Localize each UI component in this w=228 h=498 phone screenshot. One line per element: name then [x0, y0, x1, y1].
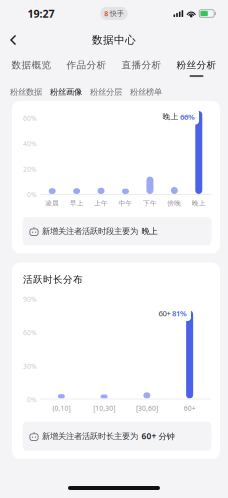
staticText: 早上	[70, 199, 84, 207]
button[interactable]: 粉丝分析	[169, 57, 224, 79]
staticText: 直播分析	[121, 59, 161, 71]
staticText: 新增关注者活跃时段主要为	[42, 226, 138, 236]
staticText: 中午	[118, 199, 132, 207]
button[interactable]: 粉丝数据	[10, 85, 42, 99]
staticText: 新增关注者活跃时长主要为	[42, 431, 138, 441]
staticText: 活跃时长分布	[23, 273, 83, 285]
button[interactable]: Back	[0, 28, 27, 52]
staticText: 傍晚	[167, 199, 181, 207]
button[interactable]: 数据概览	[4, 57, 59, 79]
staticText: 20%	[23, 164, 37, 174]
staticText: 粉丝画像	[50, 87, 82, 97]
staticText: 0%	[27, 190, 37, 199]
staticText: 晚上	[192, 199, 206, 207]
button[interactable]: 直播分析	[114, 57, 169, 79]
staticText: 60+ 分钟	[141, 430, 174, 442]
staticText: 90%	[23, 294, 37, 304]
staticText: 0%	[27, 395, 37, 404]
staticText: 下午	[143, 199, 157, 207]
staticText: 60%	[23, 113, 37, 123]
button[interactable]: 粉丝榜单	[130, 85, 162, 99]
staticText: 60%	[23, 328, 37, 337]
button[interactable]: 粉丝分层	[90, 85, 122, 99]
staticText: 81%	[172, 308, 187, 318]
staticText: 粉丝分析	[176, 59, 216, 71]
staticText: 19:27	[27, 6, 54, 21]
staticText: 粉丝榜单	[130, 87, 162, 97]
staticText: 数据概览	[11, 59, 51, 71]
staticText: 8	[104, 9, 108, 18]
staticText: 粉丝数据	[10, 87, 42, 97]
staticText: 凌晨	[45, 199, 59, 207]
staticText: 30%	[23, 361, 37, 371]
staticText: [10,30]	[93, 403, 115, 413]
staticText: 快手	[110, 9, 124, 18]
staticText: 晚上	[162, 112, 178, 122]
staticText: 40%	[23, 139, 37, 148]
staticText: 晚上	[141, 226, 157, 236]
staticText: 数据中心	[92, 33, 136, 47]
staticText: 60+	[158, 308, 170, 318]
staticText: (0,10]	[52, 403, 70, 413]
button[interactable]: 作品分析	[59, 57, 114, 79]
button[interactable]: 粉丝画像	[50, 85, 82, 99]
staticText: 上午	[94, 199, 108, 207]
staticText: 66%	[180, 111, 195, 122]
staticText: [30,60]	[136, 403, 158, 413]
staticText: 60+	[184, 403, 196, 413]
staticText: 粉丝分层	[90, 87, 122, 97]
staticText: 作品分析	[66, 59, 106, 71]
